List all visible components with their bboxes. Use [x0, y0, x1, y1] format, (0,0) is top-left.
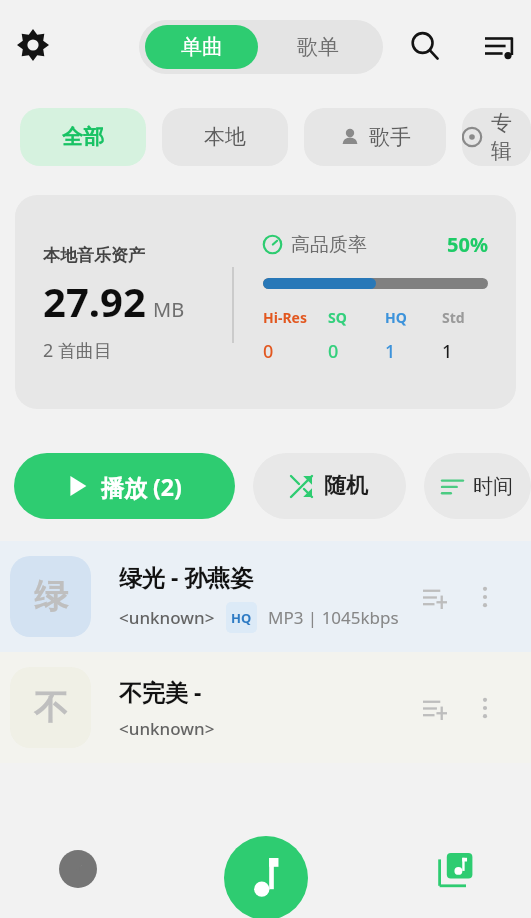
- button[interactable]: 专辑: [462, 108, 531, 166]
- button[interactable]: Add to playlist: [411, 684, 459, 732]
- button[interactable]: 歌单: [258, 25, 377, 69]
- staticText: 绿光 - 孙燕姿: [119, 561, 254, 592]
- staticText: 播放 (2): [101, 471, 182, 502]
- staticText: 不完美 -: [119, 676, 202, 707]
- staticText: MB: [153, 296, 185, 323]
- button[interactable]: 单曲: [145, 25, 258, 69]
- button[interactable]: 本地: [162, 108, 288, 166]
- button[interactable]: 随机: [253, 453, 406, 519]
- staticText: 不: [34, 686, 68, 729]
- staticText: 1: [385, 339, 396, 364]
- staticText: 专辑: [491, 110, 531, 164]
- staticText: HQ: [231, 609, 252, 627]
- staticText: 歌单: [297, 34, 339, 60]
- button[interactable]: Settings: [10, 22, 55, 67]
- staticText: 本地: [204, 124, 246, 150]
- button[interactable]: Explore: [52, 843, 104, 895]
- button[interactable]: 时间: [424, 453, 531, 519]
- staticText: <unknown>: [119, 606, 215, 629]
- button[interactable]: Playing queue: [475, 22, 523, 70]
- staticText: 1: [442, 339, 453, 364]
- button[interactable]: 全部: [20, 108, 146, 166]
- button[interactable]: 绿: [0, 541, 531, 652]
- button[interactable]: Music: [224, 836, 308, 918]
- staticText: 0: [328, 339, 339, 364]
- button[interactable]: Playlists: [431, 842, 485, 896]
- staticText: SQ: [328, 308, 347, 327]
- staticText: 27.92: [43, 274, 146, 328]
- staticText: <unknown>: [119, 717, 215, 740]
- staticText: 高品质率: [291, 233, 367, 257]
- staticText: Hi-Res: [263, 308, 307, 327]
- staticText: 时间: [473, 474, 513, 499]
- button[interactable]: 播放 (2): [14, 453, 235, 519]
- staticText: 全部: [62, 124, 104, 150]
- staticText: 2 首曲目: [43, 338, 112, 363]
- staticText: Std: [442, 308, 465, 327]
- staticText: 随机: [324, 472, 368, 500]
- button[interactable]: More options: [461, 573, 509, 621]
- button[interactable]: More options: [461, 684, 509, 732]
- button[interactable]: Search: [401, 22, 449, 70]
- button[interactable]: 不: [0, 652, 531, 763]
- staticText: 本地音乐资产: [43, 245, 145, 266]
- staticText: 单曲: [181, 34, 223, 60]
- button[interactable]: Add to playlist: [411, 573, 459, 621]
- staticText: 50%: [447, 231, 488, 258]
- staticText: 绿: [34, 575, 68, 618]
- staticText: HQ: [385, 308, 407, 327]
- staticText: 歌手: [369, 124, 411, 150]
- staticText: MP3 | 1045kbps: [268, 606, 399, 629]
- staticText: 0: [263, 339, 274, 364]
- button[interactable]: 歌手: [304, 108, 446, 166]
